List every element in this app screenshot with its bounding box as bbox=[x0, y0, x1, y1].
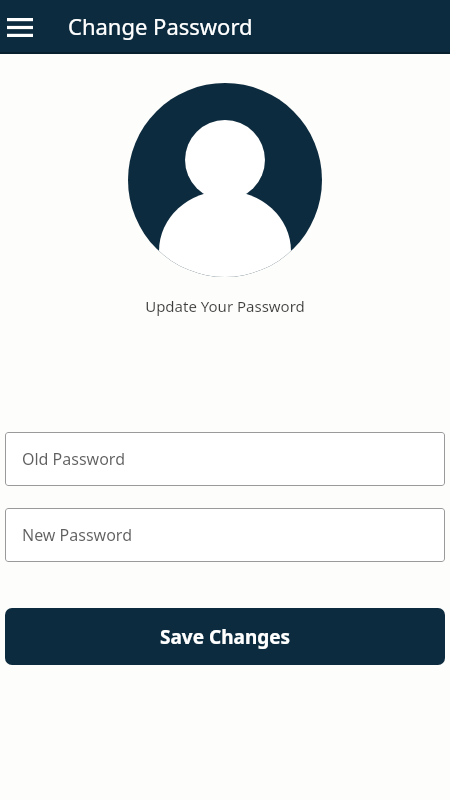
staticText: Change Password bbox=[68, 11, 253, 41]
staticText: Save Changes bbox=[160, 624, 291, 650]
staticText: New Password bbox=[22, 524, 132, 546]
button[interactable]: Old Password bbox=[5, 432, 445, 486]
staticText: Old Password bbox=[22, 448, 125, 470]
staticText: Update Your Password bbox=[0, 296, 450, 316]
button[interactable]: New Password bbox=[5, 508, 445, 562]
button[interactable]: Open navigation menu bbox=[2, 9, 38, 45]
button[interactable]: Save Changes bbox=[5, 608, 445, 665]
